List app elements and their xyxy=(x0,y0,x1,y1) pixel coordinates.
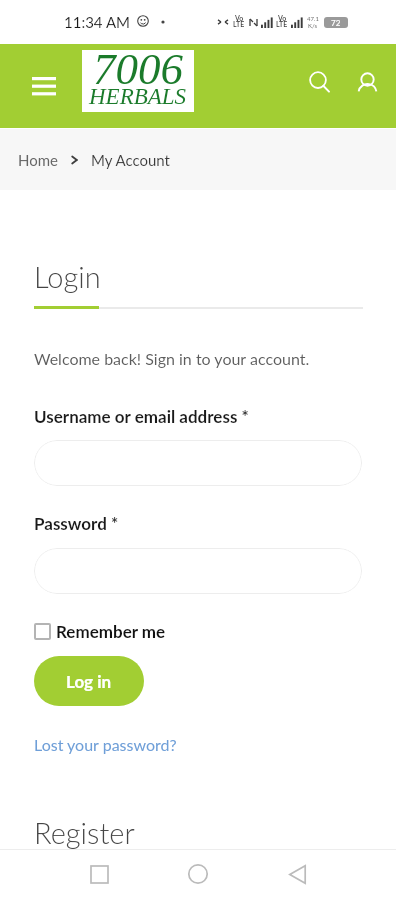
staticText: Welcome back! Sign in to your account. xyxy=(34,349,310,368)
staticText: Remember me xyxy=(56,621,166,641)
button[interactable]: Recent apps xyxy=(75,850,123,898)
staticText: Register xyxy=(34,815,135,850)
button[interactable]: Search xyxy=(296,60,344,108)
staticText: Vo xyxy=(235,14,244,22)
button[interactable]: Log in xyxy=(34,656,144,706)
staticText: Log in xyxy=(66,671,112,691)
staticText: 7006 xyxy=(93,44,183,94)
staticText: LTE xyxy=(276,20,288,28)
staticText: Login xyxy=(34,259,101,294)
staticText: LTE xyxy=(233,20,245,28)
staticText: 47.1 xyxy=(307,15,319,22)
button[interactable] xyxy=(34,548,362,594)
staticText: My Account xyxy=(91,151,170,169)
button[interactable]: Home xyxy=(18,151,58,169)
staticText: 11:34 AM xyxy=(64,13,130,31)
staticText: K/s xyxy=(308,22,318,29)
button[interactable]: Home xyxy=(174,850,222,898)
staticText: 72 xyxy=(331,18,341,28)
button[interactable]: Open menu xyxy=(20,62,68,110)
staticText: Vo xyxy=(278,14,287,22)
button[interactable]: Remember me xyxy=(34,618,166,644)
button[interactable] xyxy=(34,440,362,486)
staticText: HERBALS xyxy=(89,84,187,109)
button[interactable]: Lost your password? xyxy=(34,735,177,754)
button[interactable]: My account xyxy=(343,60,391,108)
button[interactable]: Back xyxy=(273,850,321,898)
button[interactable]: 7006 xyxy=(82,50,194,112)
staticText: Password * xyxy=(34,513,119,533)
staticText: Username or email address * xyxy=(34,406,249,426)
